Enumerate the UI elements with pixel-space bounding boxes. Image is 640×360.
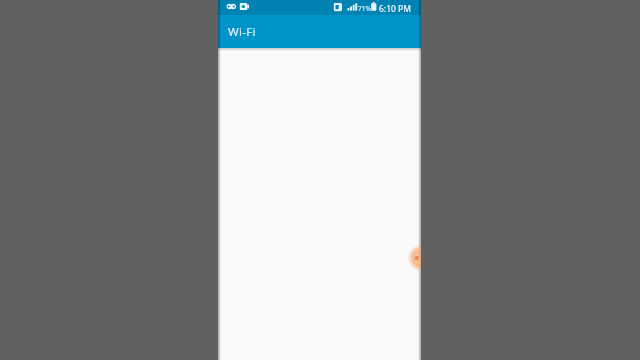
button[interactable]: Wi-Fi — [218, 15, 421, 48]
button[interactable] — [407, 244, 421, 272]
staticText: Wi-Fi — [228, 24, 256, 40]
staticText: 6:10 PM — [379, 3, 411, 15]
staticText: 71% — [358, 4, 371, 13]
